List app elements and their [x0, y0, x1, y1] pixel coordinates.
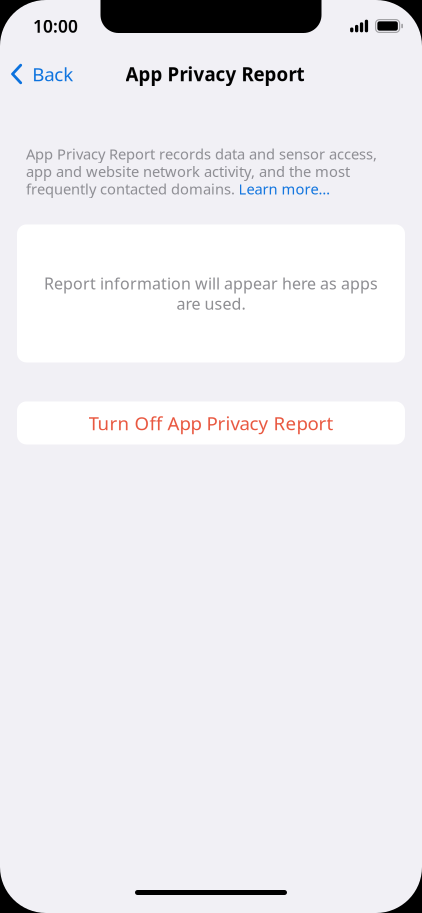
staticText: Back [32, 62, 73, 86]
staticText: 10:00 [33, 14, 78, 37]
staticText: app and website network activity, and th… [26, 161, 350, 181]
staticText: App Privacy Report [125, 62, 304, 86]
staticText: Learn more… [238, 179, 330, 198]
button[interactable]: Back [0, 53, 104, 95]
button[interactable]: Learn more… [238, 179, 330, 198]
staticText: Report information will appear here as a… [44, 273, 378, 294]
staticText: are used. [176, 293, 245, 314]
staticText: frequently contacted domains. [26, 179, 235, 198]
staticText: Turn Off App Privacy Report [88, 410, 333, 435]
button[interactable]: Turn Off App Privacy Report [17, 401, 405, 444]
staticText: App Privacy Report records data and sens… [26, 144, 377, 163]
